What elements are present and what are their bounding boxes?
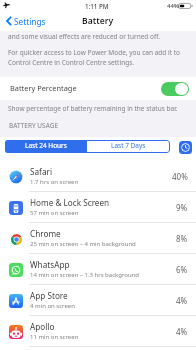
button[interactable]: Settings (2, 14, 50, 28)
staticText: and some visual effects are reduced or t… (8, 32, 161, 41)
staticText: 9% (176, 202, 188, 213)
staticText: Last 7 Days (111, 141, 146, 150)
staticText: For quicker access to Low Power Mode, yo… (8, 48, 181, 57)
button[interactable]: Safari (0, 161, 196, 192)
button[interactable]: Apollo (0, 316, 196, 347)
staticText: Home & Lock Screen (30, 197, 110, 208)
staticText: Control Centre in Control Centre setting… (8, 58, 135, 67)
staticText: 1.7 hrs on screen (30, 178, 79, 186)
staticText: Chrome (30, 228, 61, 239)
staticText: 11 min on screen (30, 333, 79, 341)
staticText: Last 24 Hours (25, 141, 67, 150)
staticText: 4% (176, 295, 188, 306)
staticText: Show percentage of battery remaining in … (8, 104, 178, 113)
staticText: Battery (82, 15, 114, 27)
button[interactable]: App Store (0, 285, 196, 316)
staticText: 1:11 PM (85, 2, 109, 10)
staticText: App Store (30, 290, 68, 301)
staticText: 25 min on screen – 4 min background (30, 240, 136, 248)
staticText: 44% (167, 2, 179, 10)
button[interactable]: Battery Percentage (0, 77, 196, 100)
button[interactable] (161, 82, 189, 96)
button[interactable]: Last 24 Hours (5, 140, 87, 153)
button[interactable]: Home & Lock Screen (0, 192, 196, 223)
staticText: 4 min on screen (30, 302, 75, 310)
staticText: 6% (176, 264, 188, 275)
staticText: 57 min on screen (30, 209, 79, 217)
staticText: 40% (172, 171, 188, 182)
staticText: Settings (14, 16, 46, 27)
staticText: BATTERY USAGE (9, 121, 58, 130)
button[interactable]: Show by time (179, 141, 192, 154)
button[interactable]: WhatsApp (0, 254, 196, 285)
staticText: Apollo (30, 321, 55, 332)
staticText: Safari (30, 166, 52, 177)
button[interactable]: Last 7 Days (87, 140, 170, 153)
staticText: 14 min on screen – 1.3 hrs background (30, 271, 140, 279)
staticText: Battery Percentage (10, 83, 77, 93)
staticText: 8% (176, 233, 188, 244)
button[interactable]: Chrome (0, 223, 196, 254)
staticText: 4% (176, 326, 188, 337)
staticText: WhatsApp (30, 259, 70, 270)
